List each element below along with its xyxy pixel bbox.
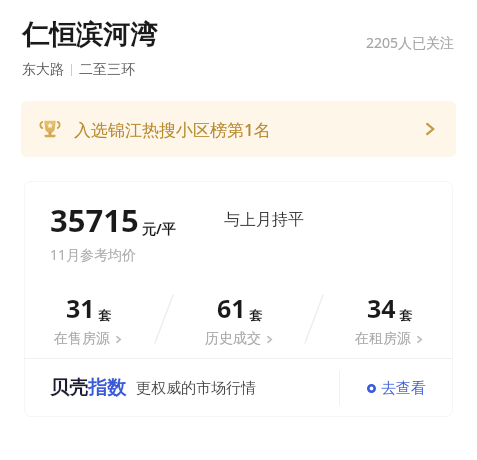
- button[interactable]: 奖杯: [21, 101, 456, 157]
- staticText: 元/平: [142, 219, 176, 238]
- button[interactable]: 34: [325, 286, 453, 352]
- staticText: 去查看: [381, 379, 426, 398]
- staticText: 35715: [50, 199, 139, 241]
- staticText: 历史成交: [205, 330, 261, 348]
- staticText: 套: [98, 307, 111, 323]
- staticText: 与上月持平: [224, 210, 304, 230]
- button[interactable]: 31: [24, 286, 153, 352]
- other: 奖杯: [38, 117, 62, 141]
- button[interactable]: 61: [175, 286, 303, 352]
- staticText: 在售房源: [54, 330, 110, 348]
- staticText: 套: [249, 307, 262, 323]
- staticText: 指数: [88, 376, 126, 400]
- staticText: 仁恒滨河湾: [22, 18, 157, 52]
- staticText: 二至三环: [79, 61, 135, 79]
- staticText: 2205人已关注: [366, 33, 455, 52]
- staticText: 更权威的市场行情: [136, 379, 256, 398]
- button[interactable]: 去查看: [340, 359, 453, 417]
- staticText: 61: [217, 291, 246, 325]
- staticText: 入选锦江热搜小区榜第1名: [74, 118, 271, 141]
- staticText: 11月参考均价: [50, 245, 137, 264]
- staticText: 东大路: [22, 61, 64, 79]
- staticText: 31: [66, 291, 95, 325]
- staticText: 34: [367, 291, 396, 325]
- staticText: 贝壳: [50, 376, 88, 400]
- staticText: 套: [399, 307, 412, 323]
- staticText: 在租房源: [355, 330, 411, 348]
